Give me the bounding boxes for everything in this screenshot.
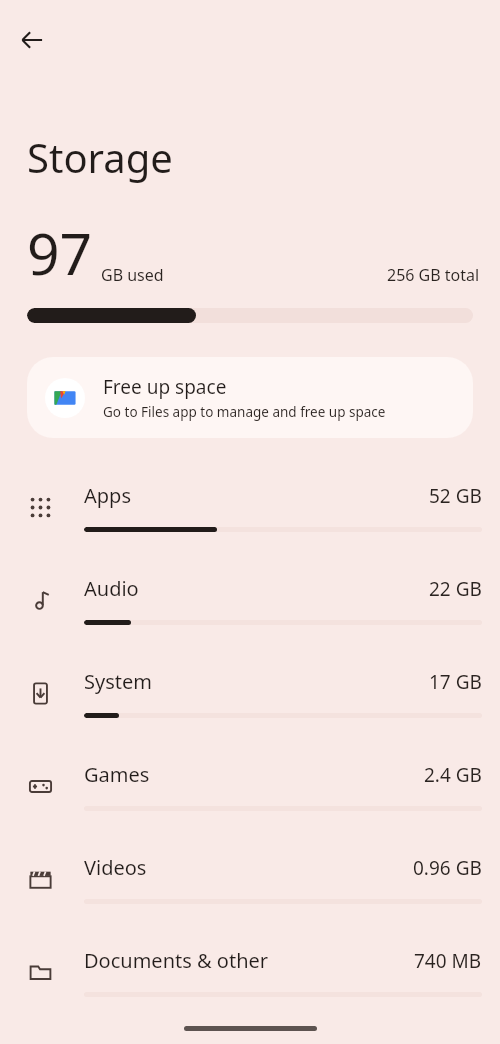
staticText: 740 MB — [414, 948, 482, 974]
staticText: 52 GB — [429, 483, 482, 509]
button[interactable]: Apps — [0, 460, 500, 553]
button[interactable]: Free up space — [27, 357, 473, 438]
staticText: 2.4 GB — [424, 762, 482, 788]
button[interactable]: Documents & other — [0, 925, 500, 1018]
staticText: System — [84, 668, 152, 695]
staticText: 0.96 GB — [413, 855, 482, 881]
staticText: 97 — [27, 214, 93, 292]
staticText: Storage — [27, 130, 173, 184]
staticText: Documents & other — [84, 947, 269, 974]
staticText: 256 GB total — [387, 264, 480, 286]
staticText: Audio — [84, 575, 139, 602]
button[interactable]: Back — [10, 18, 54, 62]
staticText: Videos — [84, 854, 147, 881]
button[interactable]: Videos — [0, 832, 500, 925]
staticText: GB used — [101, 264, 164, 286]
staticText: Go to Files app to manage and free up sp… — [103, 403, 386, 421]
staticText: 17 GB — [429, 669, 482, 695]
button[interactable]: Games — [0, 739, 500, 832]
button[interactable]: Audio — [0, 553, 500, 646]
staticText: 22 GB — [429, 576, 482, 602]
button[interactable]: System — [0, 646, 500, 739]
staticText: Apps — [84, 482, 131, 509]
staticText: Games — [84, 761, 150, 788]
staticText: Free up space — [103, 374, 227, 400]
